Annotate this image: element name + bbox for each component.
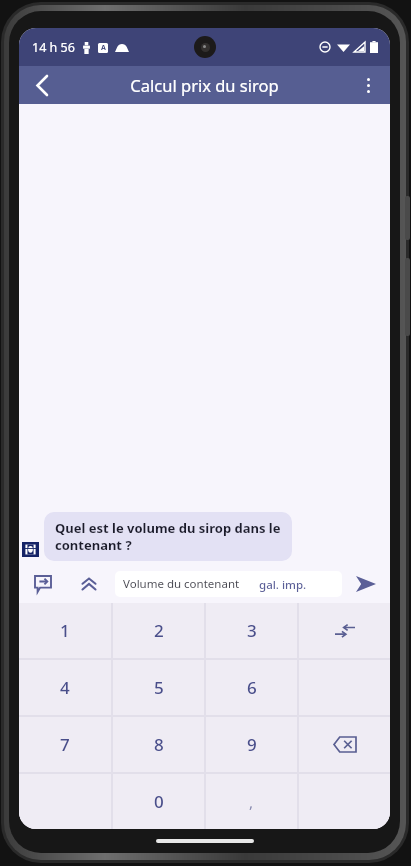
staticText: 14 h 56 (32, 39, 75, 56)
button[interactable]: 9 (206, 717, 297, 772)
button[interactable]: Back (19, 66, 63, 104)
staticText: 6 (247, 676, 257, 699)
staticText: 8 (154, 733, 164, 756)
button[interactable] (19, 774, 111, 829)
staticText: 2 (154, 619, 164, 642)
button[interactable]: 7 (19, 717, 111, 772)
button[interactable]: Send (350, 568, 382, 600)
button[interactable]: 6 (206, 660, 297, 715)
staticText: 7 (60, 733, 70, 756)
staticText: Volume du contenant (123, 576, 240, 592)
staticText: 5 (154, 676, 164, 699)
staticText: 9 (247, 733, 257, 756)
button[interactable]: Expand (73, 568, 105, 600)
staticText: 3 (247, 619, 257, 642)
button[interactable]: 3 (206, 603, 297, 658)
button[interactable]: 8 (113, 717, 204, 772)
staticText: 4 (60, 676, 70, 699)
button[interactable]: gal. imp. (246, 574, 320, 595)
button[interactable]: 2 (113, 603, 204, 658)
button[interactable]: 5 (113, 660, 204, 715)
staticText: gal. imp. (259, 577, 307, 593)
button[interactable]: Quel est le volume du sirop dans le cont… (44, 512, 292, 561)
button[interactable]: Volume du contenant (115, 571, 342, 597)
staticText: Quel est le volume du sirop dans le cont… (55, 519, 281, 554)
button[interactable]: Insert answer (27, 568, 59, 600)
button[interactable]: More options (346, 66, 390, 104)
staticText: Calcul prix du sirop (130, 74, 279, 96)
button[interactable]: Tab (299, 603, 390, 658)
staticText: , (249, 792, 254, 812)
button[interactable]: Backspace (299, 717, 390, 772)
staticText: 0 (154, 790, 164, 813)
button[interactable]: 4 (19, 660, 111, 715)
button[interactable]: 1 (19, 603, 111, 658)
staticText: 1 (60, 619, 70, 642)
button[interactable]: 0 (113, 774, 204, 829)
staticText: A (101, 43, 106, 53)
button[interactable] (299, 774, 390, 829)
